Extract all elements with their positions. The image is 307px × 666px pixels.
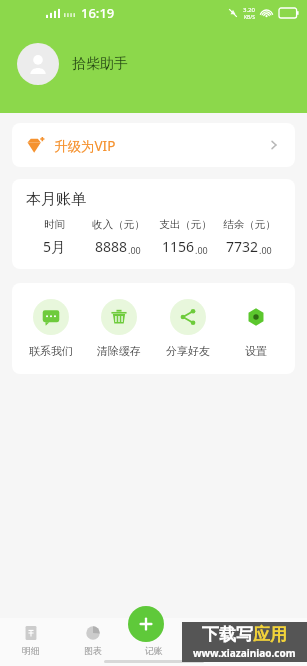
staticText: 应用 bbox=[253, 624, 287, 645]
button[interactable]: 记账 bbox=[128, 606, 164, 642]
button[interactable]: 本月账单 bbox=[12, 179, 295, 269]
staticText: 支出（元） bbox=[159, 218, 212, 231]
staticText: 清除缓存 bbox=[97, 344, 141, 358]
staticText: 记账 bbox=[145, 645, 163, 656]
staticText: 升级为VIP bbox=[54, 137, 116, 155]
staticText: KB/S bbox=[244, 14, 255, 21]
button[interactable]: 图表 bbox=[62, 618, 123, 666]
staticText: 联系我们 bbox=[29, 344, 73, 358]
other: 清除缓存 bbox=[101, 299, 137, 335]
other: 联系我们 bbox=[33, 299, 69, 335]
staticText: 16:19 bbox=[81, 4, 115, 22]
button[interactable]: 设置 bbox=[226, 297, 286, 360]
staticText: 8888 bbox=[95, 237, 128, 256]
staticText: .00 bbox=[259, 244, 272, 256]
staticText: .00 bbox=[128, 244, 141, 256]
staticText: 5月 bbox=[43, 237, 66, 256]
button[interactable]: Avatar bbox=[17, 43, 59, 85]
staticText: 分享好友 bbox=[166, 344, 210, 358]
staticText: 明细 bbox=[22, 645, 40, 656]
button[interactable]: 分享好友 bbox=[158, 297, 218, 360]
staticText: 结余（元） bbox=[223, 218, 276, 231]
other: 分享好友 bbox=[170, 299, 206, 335]
button[interactable]: 升级为VIP bbox=[12, 123, 295, 167]
staticText: www.xiazainiao.com bbox=[193, 646, 296, 660]
staticText: 下载写 bbox=[202, 624, 253, 645]
staticText: 设置 bbox=[245, 344, 267, 358]
staticText: 7732 bbox=[226, 237, 259, 256]
button[interactable]: 明细 bbox=[0, 618, 62, 666]
button[interactable]: 联系我们 bbox=[21, 297, 81, 360]
staticText: .00 bbox=[195, 244, 208, 256]
button[interactable]: 记账 bbox=[123, 618, 184, 666]
staticText: 1156 bbox=[162, 237, 195, 256]
staticText: 图表 bbox=[84, 645, 102, 656]
staticText: 本月账单 bbox=[26, 190, 86, 209]
staticText: 收入（元） bbox=[92, 218, 145, 231]
button[interactable]: 清除缓存 bbox=[89, 297, 149, 360]
staticText: 时间 bbox=[44, 218, 65, 231]
staticText: 拾柴助手 bbox=[72, 55, 128, 73]
staticText: 3.20 bbox=[243, 6, 255, 14]
other: 设置 bbox=[238, 299, 274, 335]
